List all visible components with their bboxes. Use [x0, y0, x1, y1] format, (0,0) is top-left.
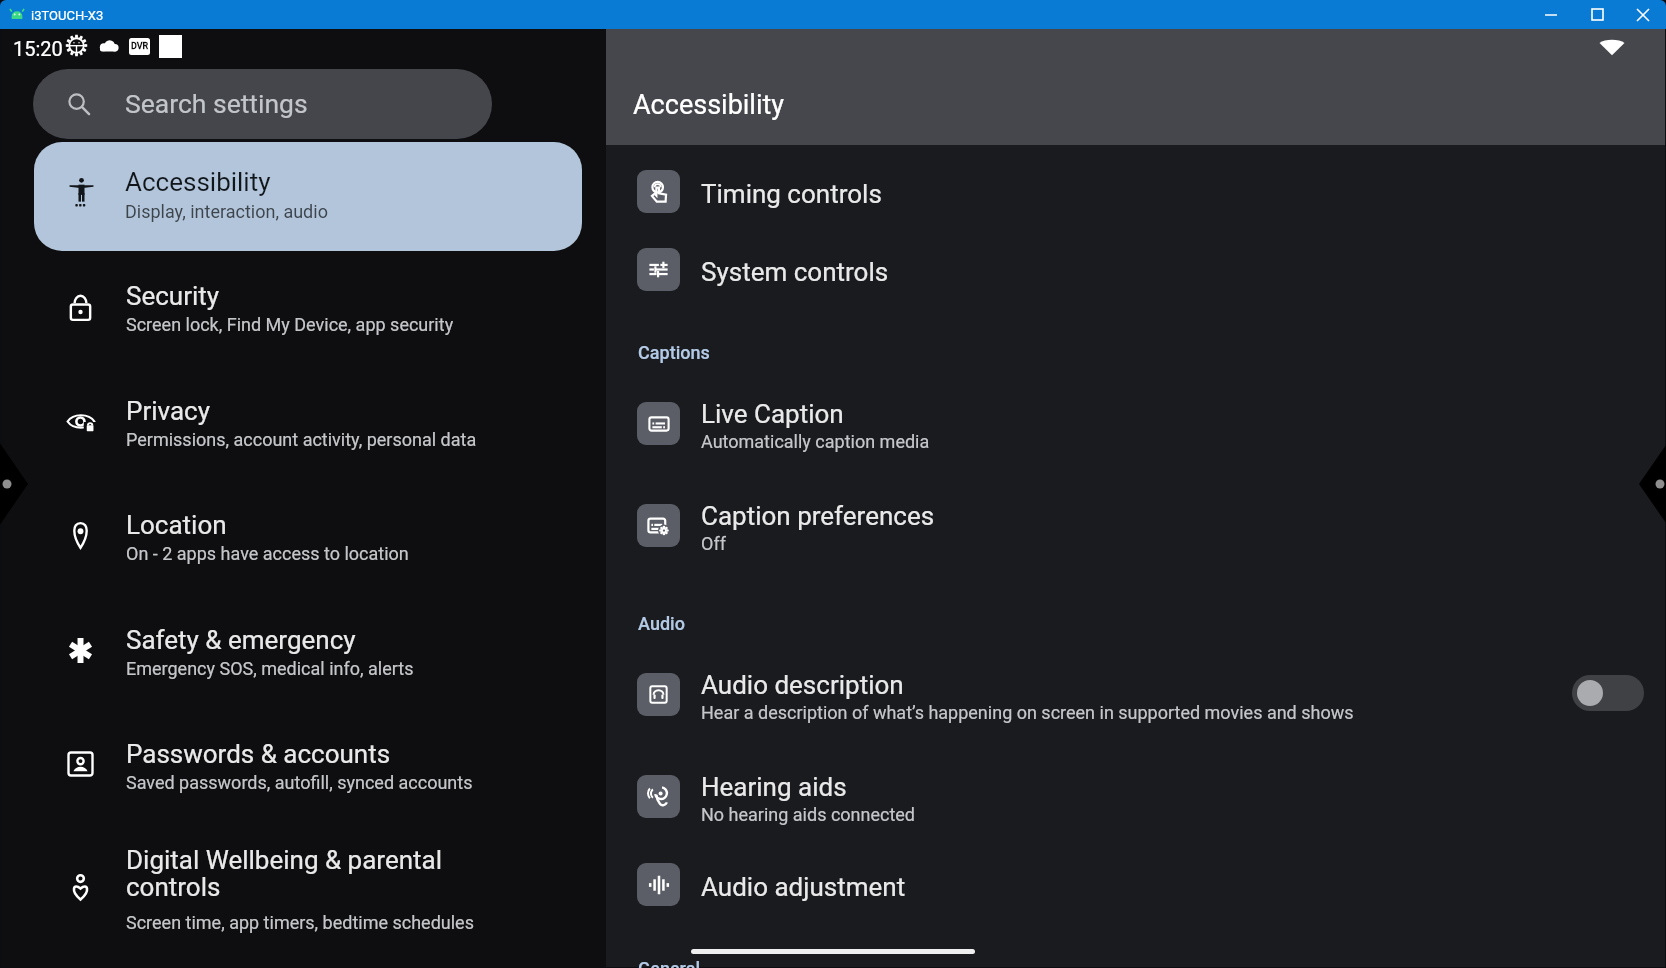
staticText: Saved passwords, autofill, synced accoun…: [126, 772, 473, 793]
staticText: General: [638, 958, 701, 968]
button[interactable]: Minimize: [1528, 0, 1574, 29]
staticText: Emergency SOS, medical info, alerts: [126, 658, 414, 679]
staticText: On - 2 apps have access to location: [126, 543, 409, 564]
other: Wi-Fi: [1599, 35, 1625, 61]
button[interactable]: Safety & emergency: [2, 590, 607, 704]
button[interactable]: Security: [2, 246, 607, 360]
button[interactable]: Caption preferences: [606, 479, 1665, 580]
staticText: Accessibility: [125, 167, 271, 197]
staticText: Screen lock, Find My Device, app securit…: [126, 314, 454, 335]
staticText: Security: [126, 281, 220, 311]
button[interactable]: Hearing aids: [606, 750, 1665, 851]
staticText: Automatically caption media: [701, 431, 930, 452]
staticText: Off: [701, 533, 726, 554]
staticText: Permissions, account activity, personal …: [126, 429, 477, 450]
staticText: DVR: [131, 41, 149, 52]
button[interactable]: Live Caption: [606, 377, 1665, 478]
staticText: i3TOUCH-X3: [31, 8, 104, 23]
button[interactable]: Audio description toggle, off: [1572, 675, 1644, 711]
staticText: Accessibility: [633, 89, 785, 121]
button[interactable]: Privacy: [2, 361, 607, 475]
staticText: Search settings: [125, 88, 308, 119]
staticText: Display, interaction, audio: [125, 201, 328, 222]
staticText: Captions: [638, 342, 710, 363]
button[interactable]: Accessibility: [34, 142, 582, 251]
button[interactable]: Close: [1620, 0, 1666, 29]
staticText: Hear a description of what’s happening o…: [701, 702, 1354, 723]
button[interactable]: Passwords & accounts: [2, 704, 607, 818]
staticText: Timing controls: [701, 179, 882, 209]
staticText: Audio adjustment: [701, 872, 906, 902]
staticText: Privacy: [126, 396, 210, 426]
staticText: 15:20: [13, 37, 63, 60]
button[interactable]: Maximize: [1574, 0, 1620, 29]
staticText: Live Caption: [701, 399, 844, 429]
button[interactable]: Timing controls: [606, 157, 1665, 235]
staticText: Digital Wellbeing & parental controls: [126, 845, 442, 903]
staticText: System controls: [701, 257, 889, 287]
staticText: Caption preferences: [701, 501, 935, 531]
button[interactable]: System controls: [606, 235, 1665, 313]
button[interactable]: Search settings: [33, 69, 492, 139]
staticText: Audio description: [701, 670, 904, 700]
staticText: Screen time, app timers, bedtime schedul…: [126, 912, 474, 933]
button[interactable]: Digital Wellbeing & parental controls: [2, 810, 607, 968]
button[interactable]: Location: [2, 475, 607, 589]
button[interactable]: Audio description: [606, 648, 1665, 749]
staticText: Passwords & accounts: [126, 739, 391, 769]
staticText: Audio: [638, 613, 685, 634]
staticText: Hearing aids: [701, 772, 847, 802]
staticText: Location: [126, 510, 227, 540]
staticText: Safety & emergency: [126, 625, 356, 655]
staticText: No hearing aids connected: [701, 804, 916, 825]
button[interactable]: Audio adjustment: [606, 850, 1665, 928]
